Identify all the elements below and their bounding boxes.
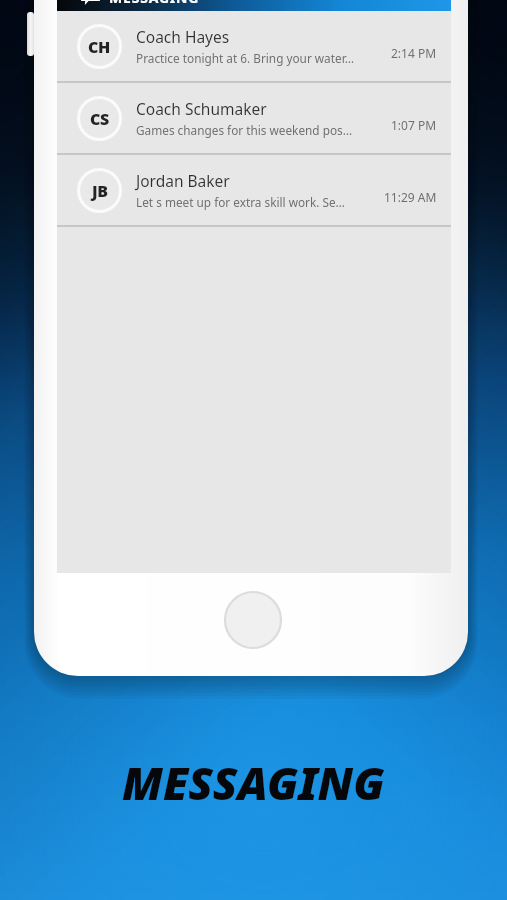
staticText: Coach Hayes	[136, 26, 230, 47]
staticText: CS	[90, 108, 110, 130]
staticText: Coach Schumaker	[136, 98, 267, 119]
button[interactable]: CS	[57, 83, 451, 153]
staticText: MESSAGING	[109, 0, 200, 7]
staticText: MESSAGING	[122, 752, 385, 813]
button[interactable]: Home	[222, 589, 284, 651]
staticText: 2:14 PM	[391, 45, 437, 61]
staticText: 1:07 PM	[391, 117, 437, 133]
staticText: Games changes for this weekend pos…	[136, 122, 353, 138]
staticText: JB	[92, 180, 108, 202]
staticText: 11:29 AM	[384, 189, 437, 205]
staticText: CH	[88, 36, 111, 58]
button[interactable]: CH	[57, 11, 451, 81]
staticText: Let s meet up for extra skill work. Se…	[136, 194, 345, 210]
staticText: Practice tonight at 6. Bring your water…	[136, 50, 354, 66]
button[interactable]: JB	[57, 155, 451, 225]
staticText: Jordan Baker	[136, 170, 230, 191]
